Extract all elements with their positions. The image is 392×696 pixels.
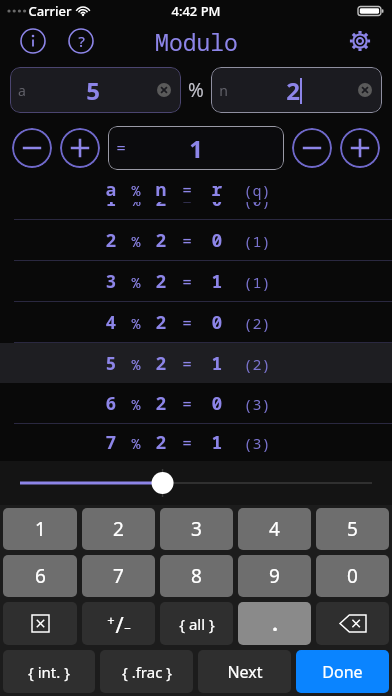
- button[interactable]: .: [238, 602, 311, 645]
- button[interactable]: 2: [82, 508, 155, 550]
- staticText: (0): [232, 190, 282, 210]
- staticText: 2: [150, 187, 172, 212]
- staticText: =: [172, 189, 202, 211]
- staticText: %: [122, 394, 150, 414]
- button[interactable]: { all }: [160, 602, 233, 645]
- staticText: +: [107, 611, 115, 629]
- button[interactable]: 4: [238, 508, 311, 550]
- button[interactable]: 1: [0, 179, 392, 219]
- button[interactable]: 3: [160, 508, 233, 550]
- staticText: 6: [100, 391, 122, 416]
- staticText: %: [188, 77, 204, 103]
- button[interactable]: { int. }: [3, 650, 95, 693]
- staticText: =: [172, 393, 202, 415]
- staticText: { all }: [179, 614, 215, 634]
- staticText: 6: [35, 563, 46, 589]
- staticText: (q): [232, 180, 282, 200]
- staticText: 2: [150, 310, 172, 335]
- staticText: r: [202, 177, 232, 202]
- staticText: =: [172, 230, 202, 252]
- staticText: %: [122, 313, 150, 333]
- button[interactable]: 5: [316, 508, 389, 550]
- button[interactable]: 7: [0, 424, 392, 461]
- staticText: 3: [100, 269, 122, 294]
- staticText: %: [122, 272, 150, 292]
- button[interactable]: [20, 468, 372, 498]
- button[interactable]: Info: [16, 24, 50, 58]
- staticText: 4:42 PM: [171, 2, 221, 20]
- button[interactable]: 1: [3, 508, 77, 550]
- staticText: 1: [202, 351, 232, 376]
- staticText: 5: [100, 351, 122, 376]
- staticText: =: [172, 353, 202, 375]
- button[interactable]: 2: [0, 220, 392, 260]
- button[interactable]: Decrease a: [12, 128, 52, 168]
- staticText: { .frac }: [122, 662, 172, 682]
- staticText: %: [122, 190, 150, 210]
- staticText: Modulo: [155, 26, 238, 57]
- button[interactable]: 6: [0, 383, 392, 423]
- button[interactable]: 5: [0, 343, 392, 383]
- staticText: .: [272, 610, 278, 637]
- staticText: 5: [86, 74, 100, 107]
- staticText: 7: [113, 563, 124, 589]
- staticText: (1): [232, 231, 282, 251]
- staticText: ?: [78, 31, 85, 51]
- button[interactable]: Backspace: [316, 602, 389, 645]
- staticText: 2: [150, 228, 172, 253]
- button[interactable]: 7: [82, 555, 155, 597]
- staticText: %: [122, 354, 150, 374]
- staticText: n: [219, 81, 228, 100]
- staticText: 0: [202, 391, 232, 416]
- button[interactable]: a: [10, 67, 181, 113]
- button[interactable]: 9: [238, 555, 311, 597]
- staticText: =: [172, 312, 202, 334]
- staticText: a: [100, 177, 122, 202]
- button[interactable]: Decrease n: [292, 128, 332, 168]
- staticText: 5: [347, 516, 358, 542]
- staticText: 0: [202, 187, 232, 212]
- staticText: 2: [100, 228, 122, 253]
- staticText: Done: [322, 661, 363, 683]
- staticText: 1: [202, 269, 232, 294]
- button[interactable]: n: [211, 67, 382, 113]
- button[interactable]: Clear: [3, 602, 77, 645]
- button[interactable]: 3: [0, 261, 392, 301]
- staticText: Carrier: [28, 2, 72, 20]
- button[interactable]: +: [82, 602, 155, 645]
- staticText: (1): [232, 272, 282, 292]
- staticText: Next: [227, 661, 263, 683]
- staticText: n: [150, 177, 172, 202]
- button[interactable]: 4: [0, 302, 392, 342]
- button[interactable]: Increase a: [60, 128, 100, 168]
- staticText: 1: [100, 187, 122, 212]
- staticText: 3: [191, 516, 202, 542]
- staticText: =: [172, 179, 202, 201]
- staticText: %: [122, 433, 150, 453]
- staticText: 1: [35, 516, 46, 542]
- staticText: 0: [202, 228, 232, 253]
- staticText: =: [172, 271, 202, 293]
- button[interactable]: Done: [296, 650, 389, 693]
- staticText: 2: [150, 391, 172, 416]
- staticText: %: [122, 180, 150, 200]
- staticText: 0: [347, 563, 358, 589]
- button[interactable]: 6: [3, 555, 77, 597]
- staticText: a: [18, 81, 26, 100]
- staticText: =: [172, 432, 202, 454]
- button[interactable]: 0: [316, 555, 389, 597]
- button[interactable]: Help: [64, 24, 98, 58]
- button[interactable]: 8: [160, 555, 233, 597]
- staticText: 2: [150, 430, 172, 455]
- staticText: 2: [150, 351, 172, 376]
- button[interactable]: Settings: [342, 23, 378, 59]
- button[interactable]: =: [108, 126, 284, 170]
- button[interactable]: Next: [198, 650, 291, 693]
- button[interactable]: { .frac }: [100, 650, 193, 693]
- staticText: (2): [232, 354, 282, 374]
- button[interactable]: Increase n: [340, 128, 380, 168]
- staticText: =: [116, 137, 126, 159]
- staticText: 1: [189, 132, 203, 165]
- staticText: 1: [202, 430, 232, 455]
- staticText: 0: [202, 310, 232, 335]
